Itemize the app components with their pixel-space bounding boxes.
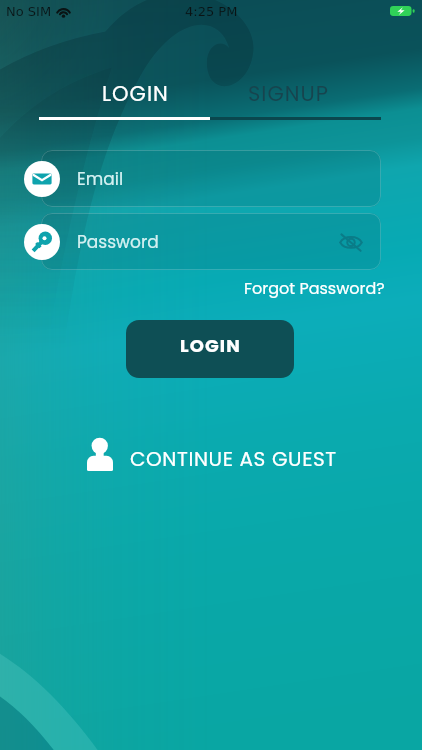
staticText: No SIM bbox=[6, 4, 52, 19]
button[interactable]: Password bbox=[41, 213, 381, 270]
other: Show password bbox=[339, 232, 363, 252]
button[interactable]: LOGIN bbox=[102, 79, 169, 108]
button[interactable]: LOGIN bbox=[126, 320, 294, 378]
button[interactable]: Forgot Password? bbox=[244, 277, 385, 299]
button[interactable]: Email bbox=[41, 150, 381, 207]
staticText: LOGIN bbox=[180, 333, 241, 358]
staticText: 4:25 PM bbox=[185, 4, 238, 19]
staticText: Password bbox=[77, 230, 159, 254]
button[interactable]: SIGNUP bbox=[248, 79, 329, 108]
staticText: Email bbox=[77, 167, 124, 191]
staticText: CONTINUE AS GUEST bbox=[130, 445, 337, 473]
button[interactable]: CONTINUE AS GUEST bbox=[84, 434, 340, 474]
